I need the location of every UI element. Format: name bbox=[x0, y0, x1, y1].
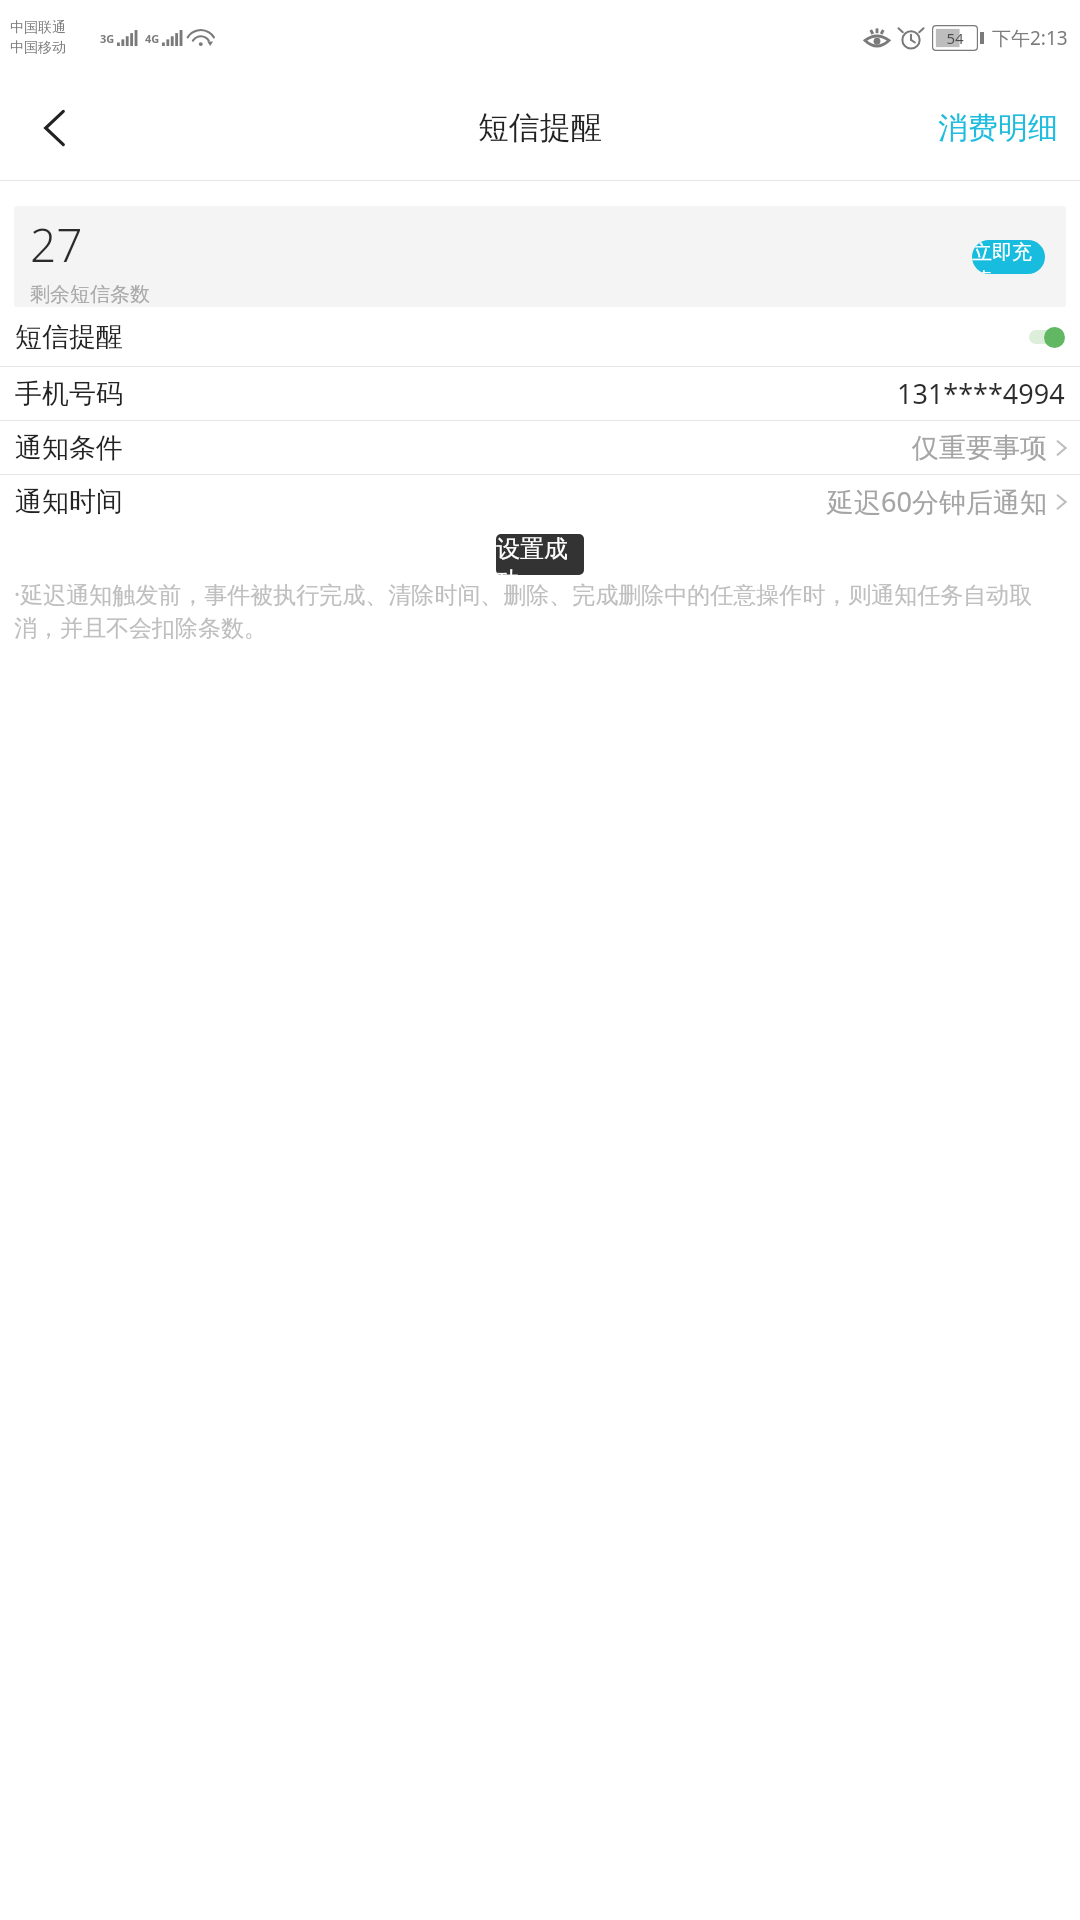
staticText: 54 bbox=[946, 28, 964, 48]
staticText: 通知时间 bbox=[15, 485, 123, 519]
button[interactable]: 手机号码 bbox=[0, 367, 1080, 420]
staticText: 手机号码 bbox=[15, 377, 123, 411]
staticText: 4G bbox=[145, 31, 160, 46]
staticText: 设置成功 bbox=[496, 534, 584, 575]
staticText: 剩余短信条数 bbox=[30, 282, 150, 307]
button[interactable]: 短信提醒 bbox=[0, 307, 1080, 366]
staticText: 131****4994 bbox=[897, 375, 1065, 412]
button[interactable]: Back bbox=[0, 75, 110, 180]
staticText: 下午2:13 bbox=[992, 25, 1068, 51]
button[interactable]: 消费明细 bbox=[916, 75, 1080, 180]
staticText: 短信提醒 bbox=[478, 108, 602, 147]
staticText: 通知条件 bbox=[15, 431, 123, 465]
staticText: 3G bbox=[100, 31, 115, 46]
staticText: 仅重要事项 bbox=[912, 431, 1047, 465]
staticText: 延迟60分钟后通知 bbox=[827, 483, 1047, 520]
staticText: 消费明细 bbox=[938, 109, 1058, 147]
button[interactable]: 立即充值 bbox=[972, 240, 1045, 274]
staticText: 立即充值 bbox=[972, 240, 1045, 274]
staticText: ·延迟通知触发前，事件被执行完成、清除时间、删除、完成删除中的任意操作时，则通知… bbox=[14, 578, 1066, 642]
button[interactable]: 通知时间 bbox=[0, 475, 1080, 528]
button[interactable]: 通知条件 bbox=[0, 421, 1080, 474]
staticText: 中国移动 bbox=[10, 39, 66, 57]
staticText: 短信提醒 bbox=[15, 320, 123, 354]
staticText: 27 bbox=[30, 213, 83, 276]
staticText: 中国联通 bbox=[10, 19, 66, 37]
